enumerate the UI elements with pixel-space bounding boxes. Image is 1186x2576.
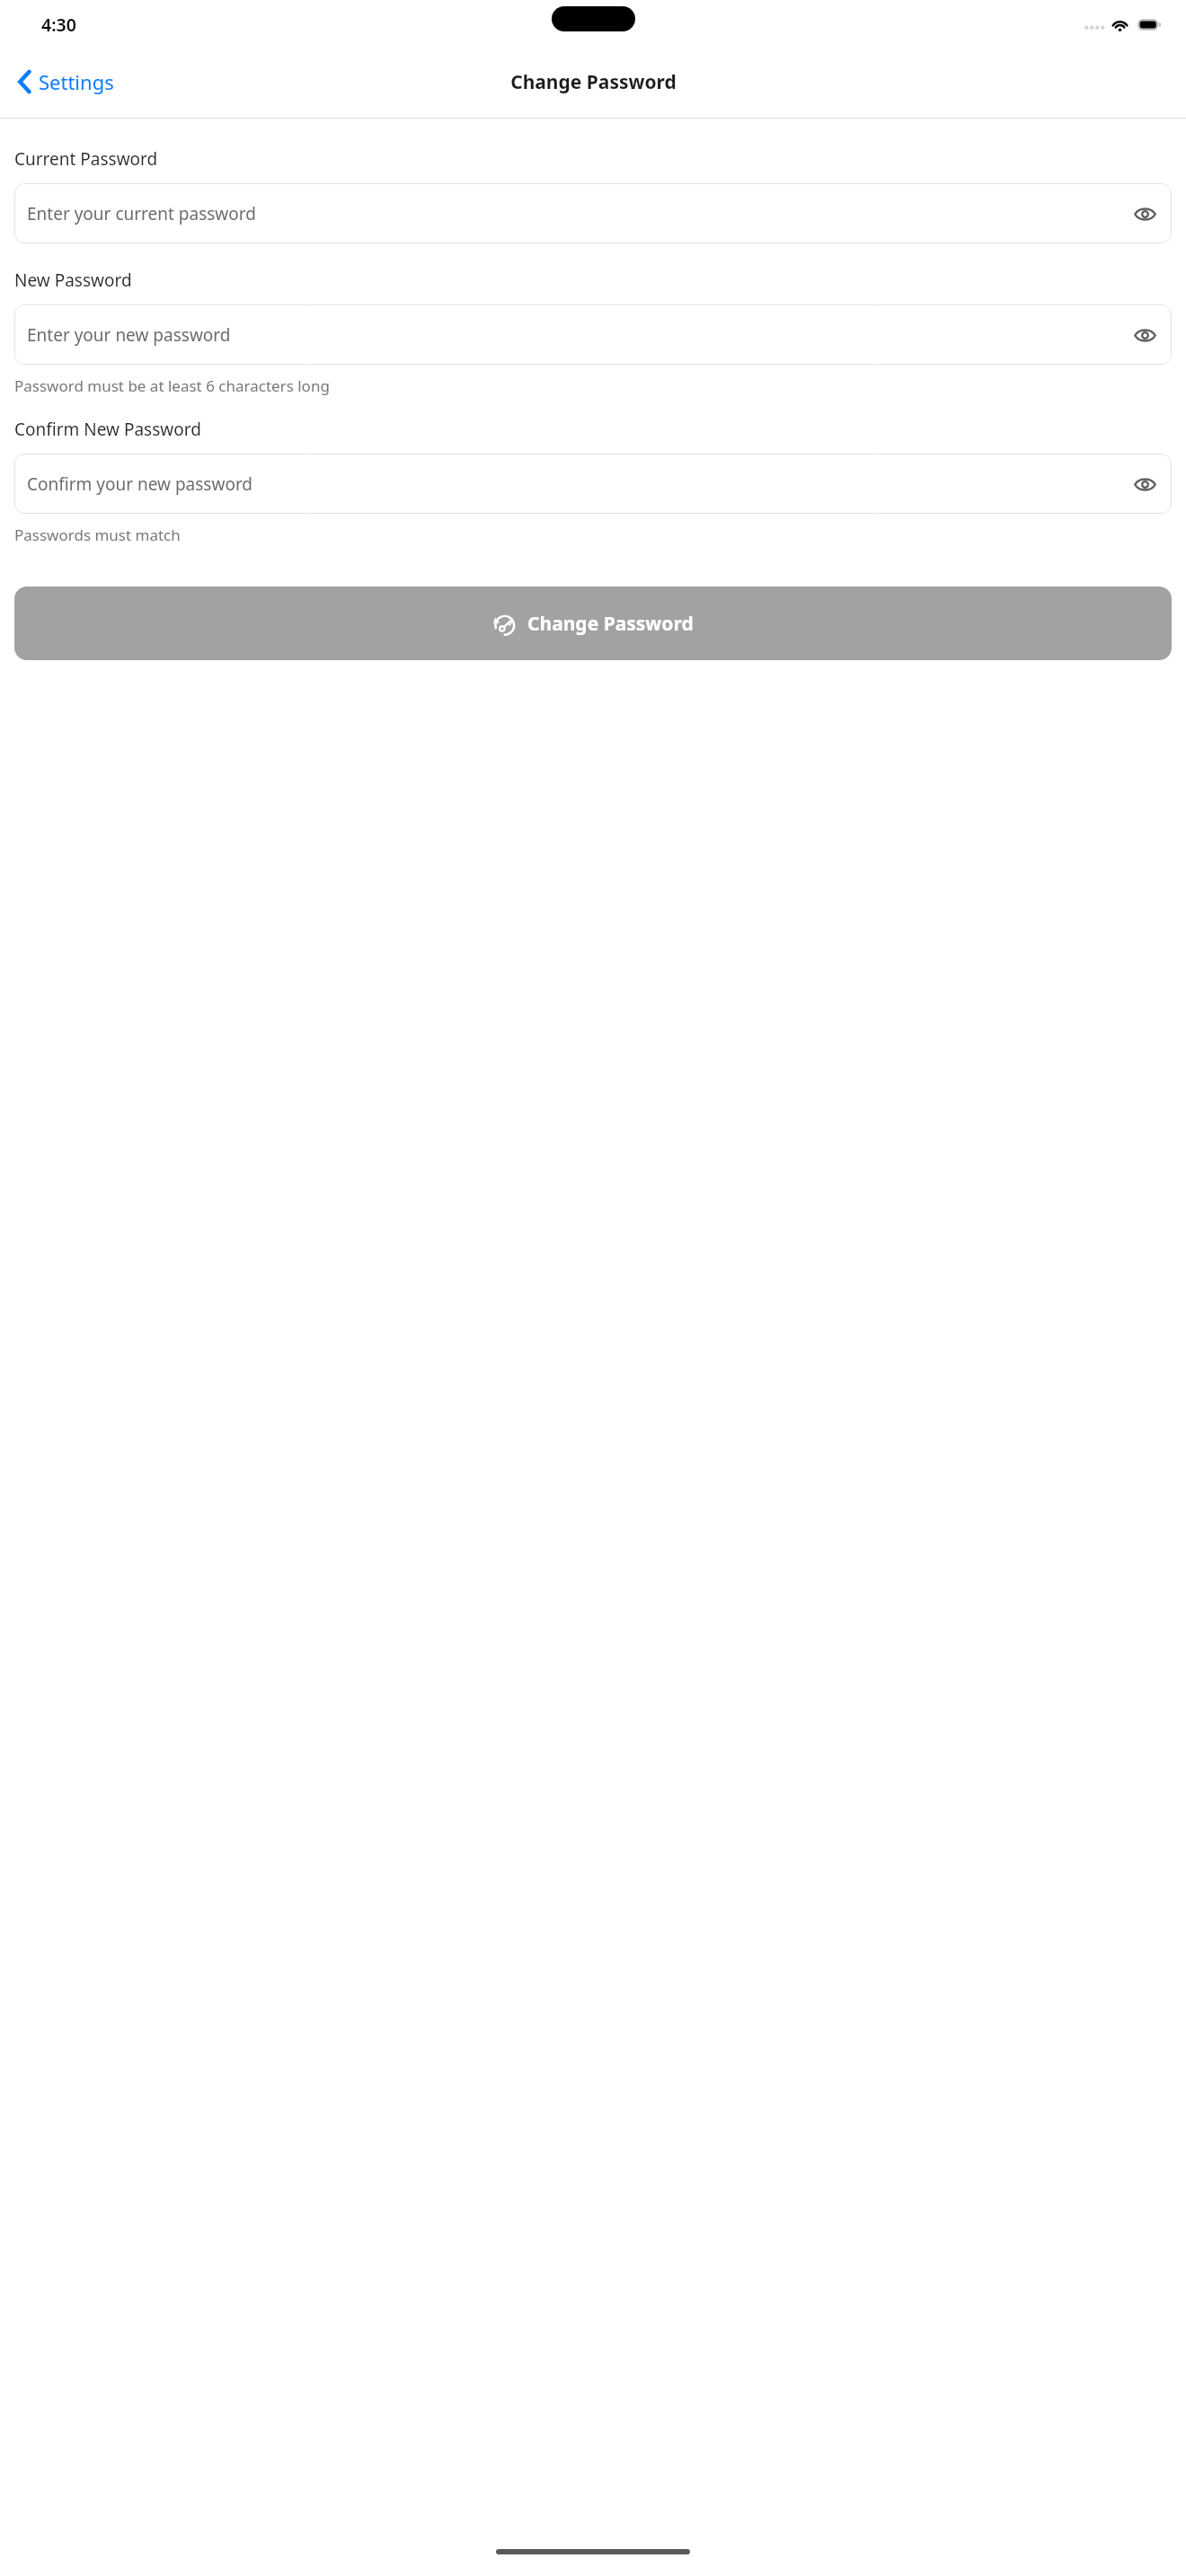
staticText: Passwords must match xyxy=(14,525,181,545)
staticText: Current Password xyxy=(14,147,158,171)
staticText: Confirm your new password xyxy=(27,472,1125,496)
button[interactable]: Show password xyxy=(1125,315,1164,355)
staticText: Settings xyxy=(39,68,114,95)
button[interactable]: Change Password xyxy=(14,587,1172,660)
staticText: Confirm New Password xyxy=(14,418,201,441)
button[interactable]: Confirm your new password xyxy=(14,454,1172,514)
button[interactable]: Enter your current password xyxy=(14,183,1172,243)
button[interactable]: Show password xyxy=(1125,464,1164,504)
button[interactable]: Settings xyxy=(13,63,119,101)
button[interactable]: Show password xyxy=(1125,194,1164,234)
staticText: Change Password xyxy=(527,611,694,637)
staticText: Enter your new password xyxy=(27,323,1125,347)
staticText: New Password xyxy=(14,269,132,292)
staticText: Change Password xyxy=(510,69,677,95)
staticText: Enter your current password xyxy=(27,202,1125,225)
staticText: 4:30 xyxy=(41,13,76,37)
button[interactable]: Enter your new password xyxy=(14,304,1172,365)
staticText: Password must be at least 6 characters l… xyxy=(14,375,330,396)
